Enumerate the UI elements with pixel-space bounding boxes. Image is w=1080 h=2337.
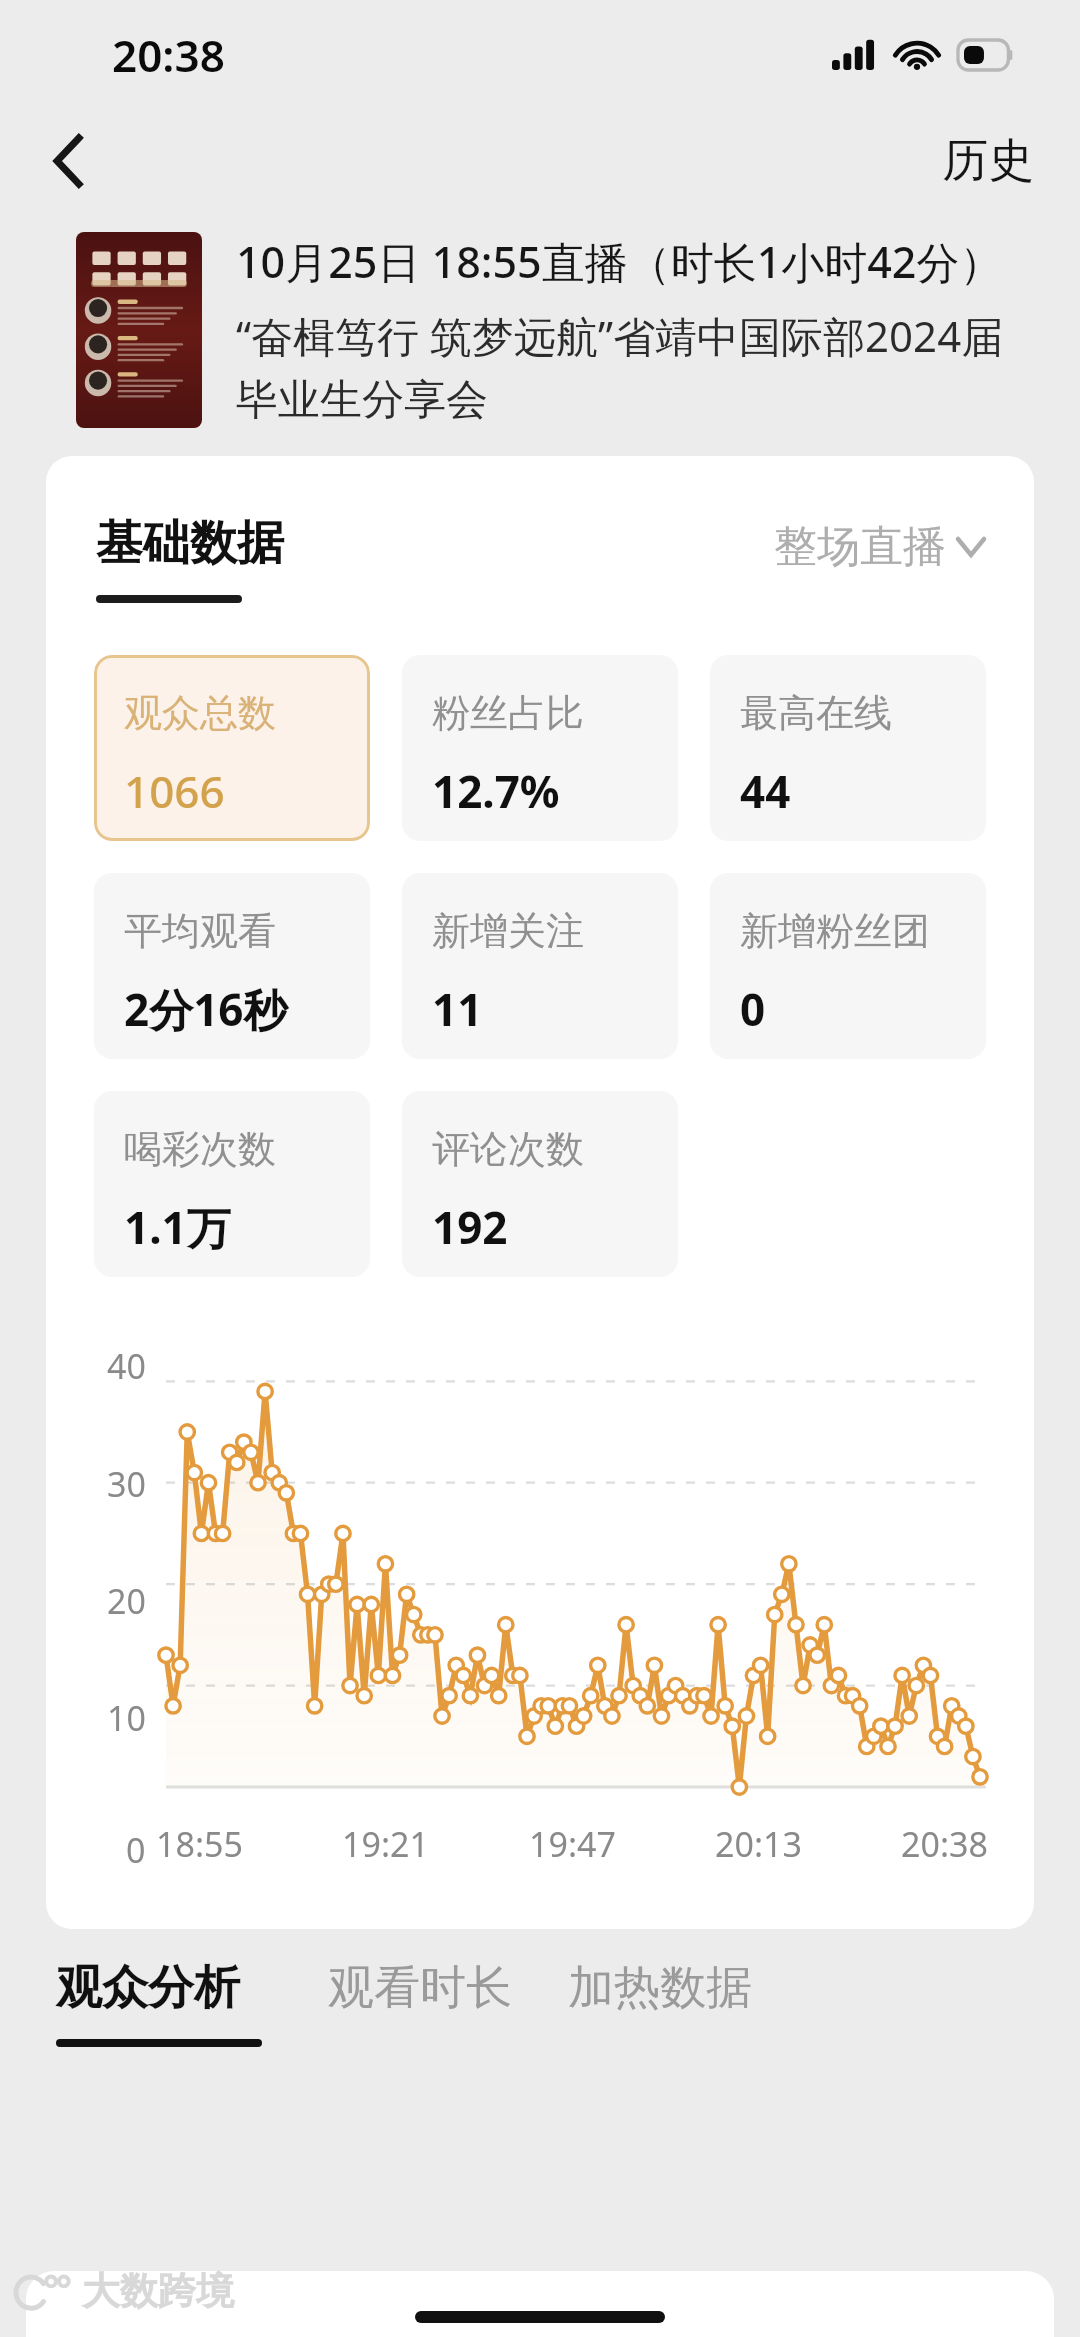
staticText: 10月25日 18:55直播（时长1小时42分） [236,232,1003,291]
staticText: 0 [126,1827,146,1873]
staticText: 最高在线 [740,689,892,737]
button[interactable]: 加热数据 [568,1959,752,2017]
staticText: 观众分析 [56,1959,240,2017]
staticText: 喝彩次数 [124,1125,276,1173]
staticText: 44 [740,761,791,821]
button[interactable]: Back [30,123,106,199]
button[interactable]: 新增关注 [402,873,678,1059]
button[interactable] [76,232,202,428]
staticText: 18:55 [156,1821,243,1867]
staticText: 19:47 [529,1821,616,1867]
staticText: 20 [107,1578,146,1624]
staticText: 观看时长 [328,1959,512,2017]
button[interactable]: 粉丝占比 [402,655,678,841]
staticText: “奋楫笃行 筑梦远航”省靖中国际部2024届毕业生分享会 [236,307,1028,427]
button[interactable]: 评论次数 [402,1091,678,1277]
button[interactable]: 观众分析 [56,1959,262,2047]
staticText: 20:38 [901,1821,988,1867]
staticText: 2分16秒 [124,979,288,1039]
staticText: 20:38 [112,25,225,85]
staticText: 20:13 [715,1821,802,1867]
staticText: 11 [432,979,483,1039]
button[interactable]: 观众总数 [94,655,370,841]
staticText: 40 [107,1343,146,1389]
button[interactable]: 整场直播 [774,520,984,598]
staticText: 0 [740,979,766,1039]
button[interactable]: 平均观看 [94,873,370,1059]
staticText: 30 [107,1461,146,1507]
button[interactable]: 观看时长 [328,1959,512,2017]
staticText: 新增关注 [432,907,584,955]
staticText: 1.1万 [124,1197,231,1257]
staticText: 历史 [942,132,1034,190]
staticText: 整场直播 [774,520,946,574]
staticText: 19:21 [342,1821,429,1867]
staticText: 观众总数 [124,689,276,737]
staticText: 12.7% [432,761,560,821]
button[interactable]: 最高在线 [710,655,986,841]
staticText: 192 [432,1197,508,1257]
staticText: 评论次数 [432,1125,584,1173]
button[interactable]: 基础数据 [96,514,284,603]
staticText: 10 [107,1695,146,1741]
button[interactable]: 喝彩次数 [94,1091,370,1277]
button[interactable]: 历史 [942,132,1034,190]
staticText: 基础数据 [96,514,284,573]
staticText: 粉丝占比 [432,689,584,737]
staticText: 大数跨境 [82,2267,234,2315]
button[interactable]: 新增粉丝团 [710,873,986,1059]
staticText: 平均观看 [124,907,276,955]
staticText: 新增粉丝团 [740,907,930,955]
staticText: 1066 [124,761,225,821]
staticText: 加热数据 [568,1959,752,2017]
